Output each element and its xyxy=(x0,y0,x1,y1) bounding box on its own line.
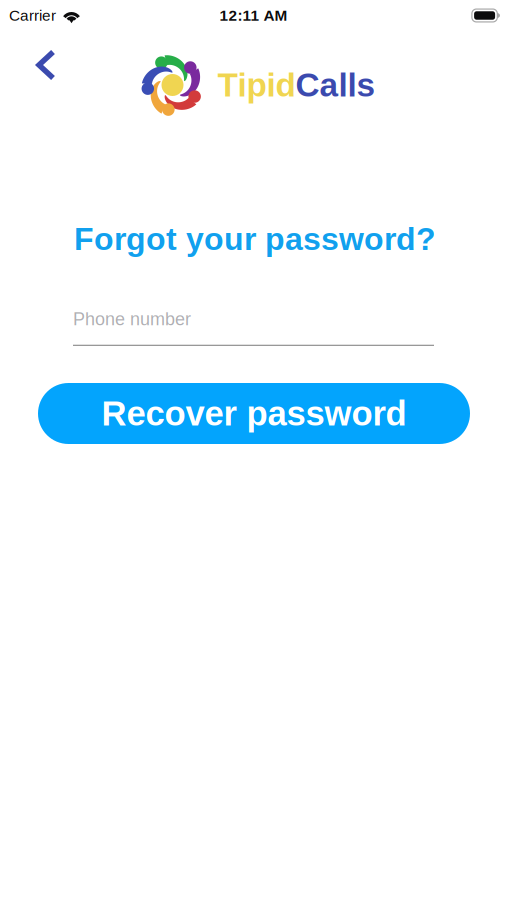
staticText: Recover password xyxy=(101,394,406,433)
button[interactable]: Recover password xyxy=(38,383,470,444)
button[interactable]: Back xyxy=(22,37,70,93)
staticText: Phone number xyxy=(73,309,191,329)
staticText: Calls xyxy=(295,66,375,104)
staticText: 12:11 AM xyxy=(219,7,287,24)
button[interactable]: Phone number xyxy=(73,309,434,346)
staticText: Tipid xyxy=(217,66,295,104)
staticText: Forgot your password? xyxy=(74,221,436,257)
staticText: Carrier xyxy=(9,7,56,24)
